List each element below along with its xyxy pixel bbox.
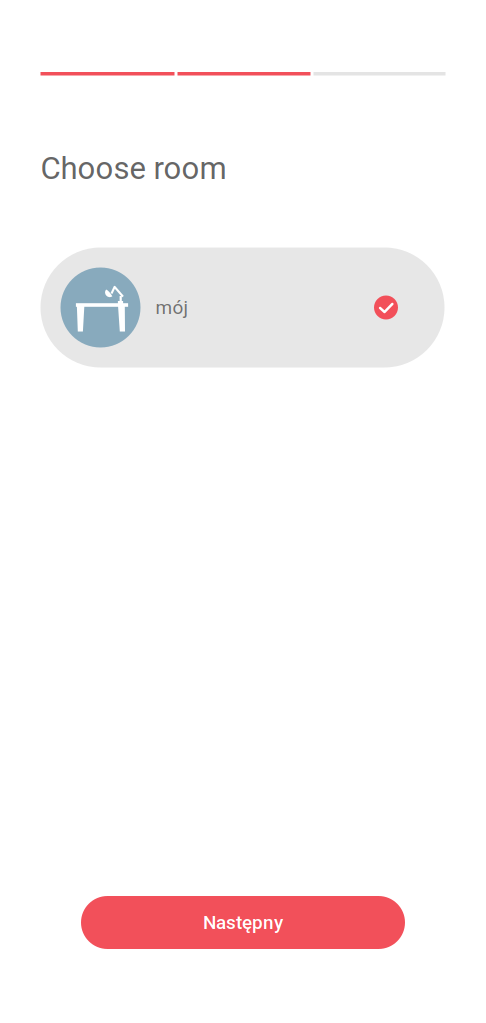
button[interactable]: Następny bbox=[81, 896, 405, 949]
staticText: Następny bbox=[203, 911, 283, 934]
staticText: Choose room bbox=[40, 150, 226, 187]
staticText: mój bbox=[155, 296, 188, 319]
button[interactable]: mój bbox=[40, 247, 444, 367]
